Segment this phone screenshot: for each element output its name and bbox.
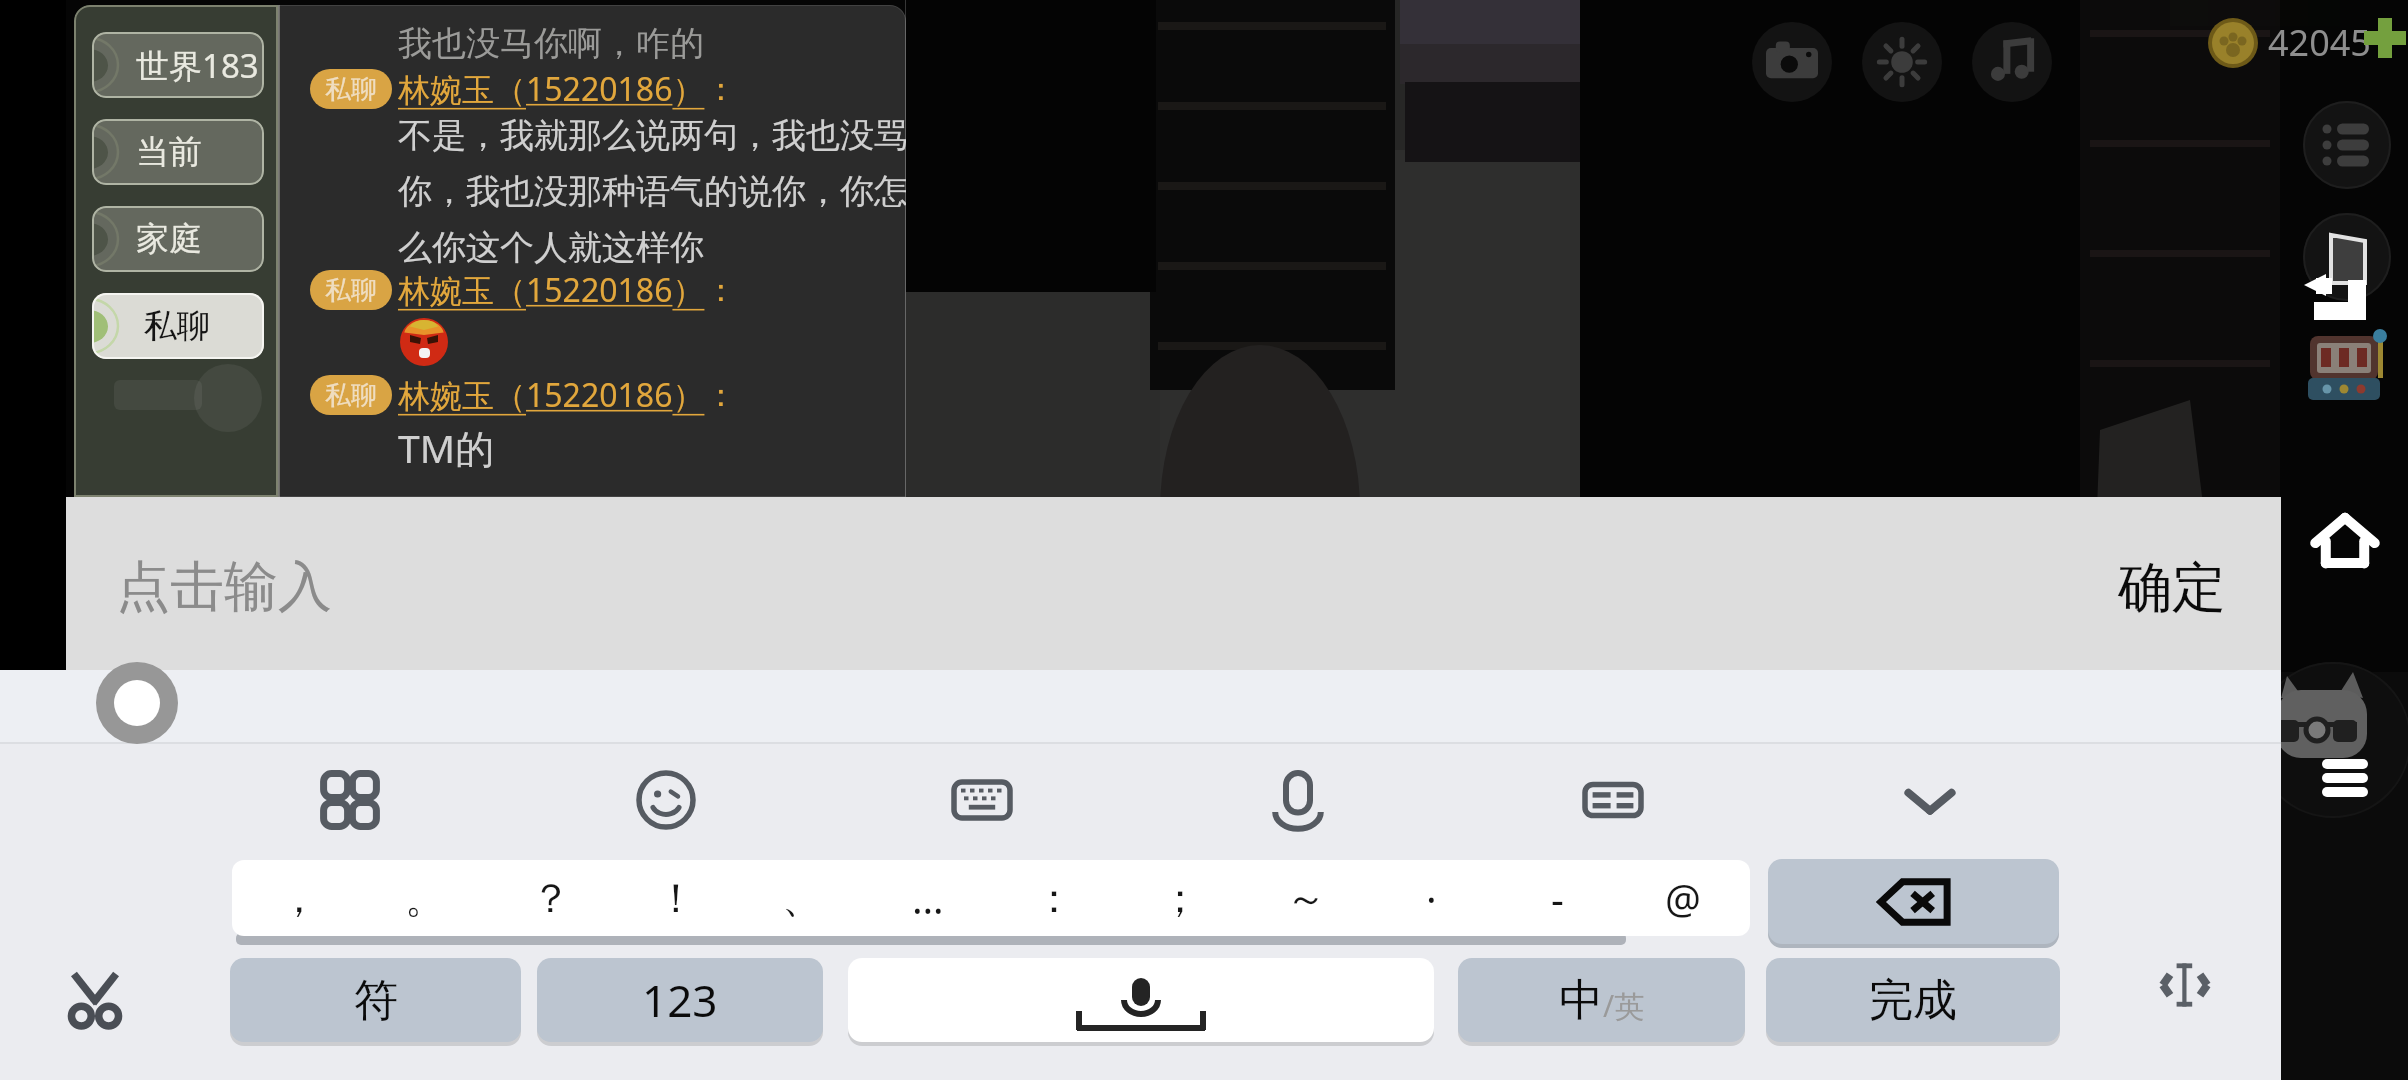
staticText: 林婉玉（15220186）	[398, 268, 705, 312]
button[interactable]: ；	[1121, 860, 1239, 936]
button[interactable]: ，	[240, 860, 358, 936]
staticText: …	[912, 871, 944, 925]
staticText: ：	[705, 69, 737, 109]
staticText: 不是，我就那么说两句，我也没骂 你，我也没那种语气的说你，你怎 么你这个人就这样…	[398, 114, 906, 269]
button[interactable]: Backspace	[1768, 859, 2059, 944]
button[interactable]: Emoji	[622, 756, 710, 844]
button[interactable]: Exit room	[2303, 213, 2391, 301]
staticText: 123	[642, 970, 718, 1030]
button[interactable]: ？	[492, 860, 610, 936]
button[interactable]: Add coins	[2364, 16, 2408, 60]
button[interactable]: Menu list	[2303, 101, 2391, 189]
staticText: ，	[279, 873, 319, 923]
button[interactable]: 、	[743, 860, 861, 936]
staticText: ；	[1160, 873, 1200, 923]
staticText: ？	[531, 873, 571, 923]
staticText: 点击输入	[116, 553, 332, 621]
staticText: ～	[1286, 873, 1326, 923]
button[interactable]: Screenshot	[1752, 22, 1832, 102]
button[interactable]: ·	[1372, 860, 1490, 936]
button[interactable]: Apps	[306, 756, 394, 844]
button[interactable]: ：	[995, 860, 1113, 936]
staticText: 确定	[2118, 554, 2226, 622]
button[interactable]: @	[1624, 860, 1742, 936]
staticText: 符	[354, 973, 398, 1028]
staticText: /英	[1603, 985, 1645, 1026]
staticText: @	[1665, 871, 1701, 925]
staticText: 林婉玉（15220186）	[398, 67, 705, 111]
button[interactable]: Clipboard	[1569, 756, 1657, 844]
button[interactable]: 。	[366, 860, 484, 936]
staticText: 林婉玉（15220186）	[398, 373, 705, 417]
button[interactable]: 家庭	[92, 206, 264, 272]
staticText: 完成	[1869, 973, 1957, 1028]
button[interactable]: Move cursor	[2140, 940, 2230, 1030]
staticText: 我也没马你啊，咋的	[398, 22, 704, 65]
button[interactable]: ～	[1247, 860, 1365, 936]
button[interactable]: Voice input	[848, 958, 1434, 1042]
staticText: TM的	[398, 421, 495, 474]
staticText: 中	[1559, 973, 1603, 1028]
staticText: ：	[705, 375, 737, 415]
staticText: ·	[1426, 871, 1437, 925]
button[interactable]: 私聊	[92, 293, 264, 359]
button[interactable]: 确定	[2104, 547, 2240, 629]
staticText: -	[1551, 871, 1564, 925]
button[interactable]: ！	[617, 860, 735, 936]
staticText: ：	[1034, 873, 1074, 923]
button[interactable]: 私聊	[310, 67, 737, 111]
button[interactable]: -	[1498, 860, 1616, 936]
staticText: 当前	[136, 131, 202, 173]
button[interactable]: 当前	[92, 119, 264, 185]
button[interactable]: Music	[1972, 22, 2052, 102]
button[interactable]: Keyboard layout	[938, 756, 1026, 844]
staticText: 、	[782, 873, 822, 923]
staticText: 私聊	[325, 274, 377, 307]
button[interactable]: 符键	[230, 958, 521, 1042]
staticText: 私聊	[144, 305, 210, 347]
staticText: 家庭	[136, 218, 202, 260]
staticText: 私聊	[325, 73, 377, 106]
staticText: 世界183	[136, 43, 259, 88]
button[interactable]: Hide keyboard	[1886, 756, 1974, 844]
button[interactable]: 中英切换	[1458, 958, 1745, 1042]
button[interactable]: 点击输入	[66, 497, 2026, 670]
staticText: 。	[405, 873, 445, 923]
button[interactable]: Slot machine	[2298, 320, 2398, 420]
button[interactable]: Coins	[2208, 18, 2258, 68]
button[interactable]: Voice input	[1254, 756, 1342, 844]
button[interactable]: 123	[537, 958, 823, 1042]
button[interactable]: Cut	[50, 955, 140, 1045]
staticText: ：	[705, 270, 737, 310]
button[interactable]: …	[869, 860, 987, 936]
button[interactable]: 私聊	[310, 268, 737, 312]
button[interactable]: Recent apps	[2300, 735, 2390, 825]
button[interactable]: Home	[2300, 495, 2390, 585]
button[interactable]: Brightness	[1862, 22, 1942, 102]
button[interactable]: 世界183	[92, 32, 264, 98]
staticText: 私聊	[325, 379, 377, 412]
button[interactable]: 私聊	[310, 373, 737, 417]
staticText: ！	[656, 873, 696, 923]
button[interactable]: 完成	[1766, 958, 2060, 1042]
staticText: 42045	[2268, 18, 2371, 67]
